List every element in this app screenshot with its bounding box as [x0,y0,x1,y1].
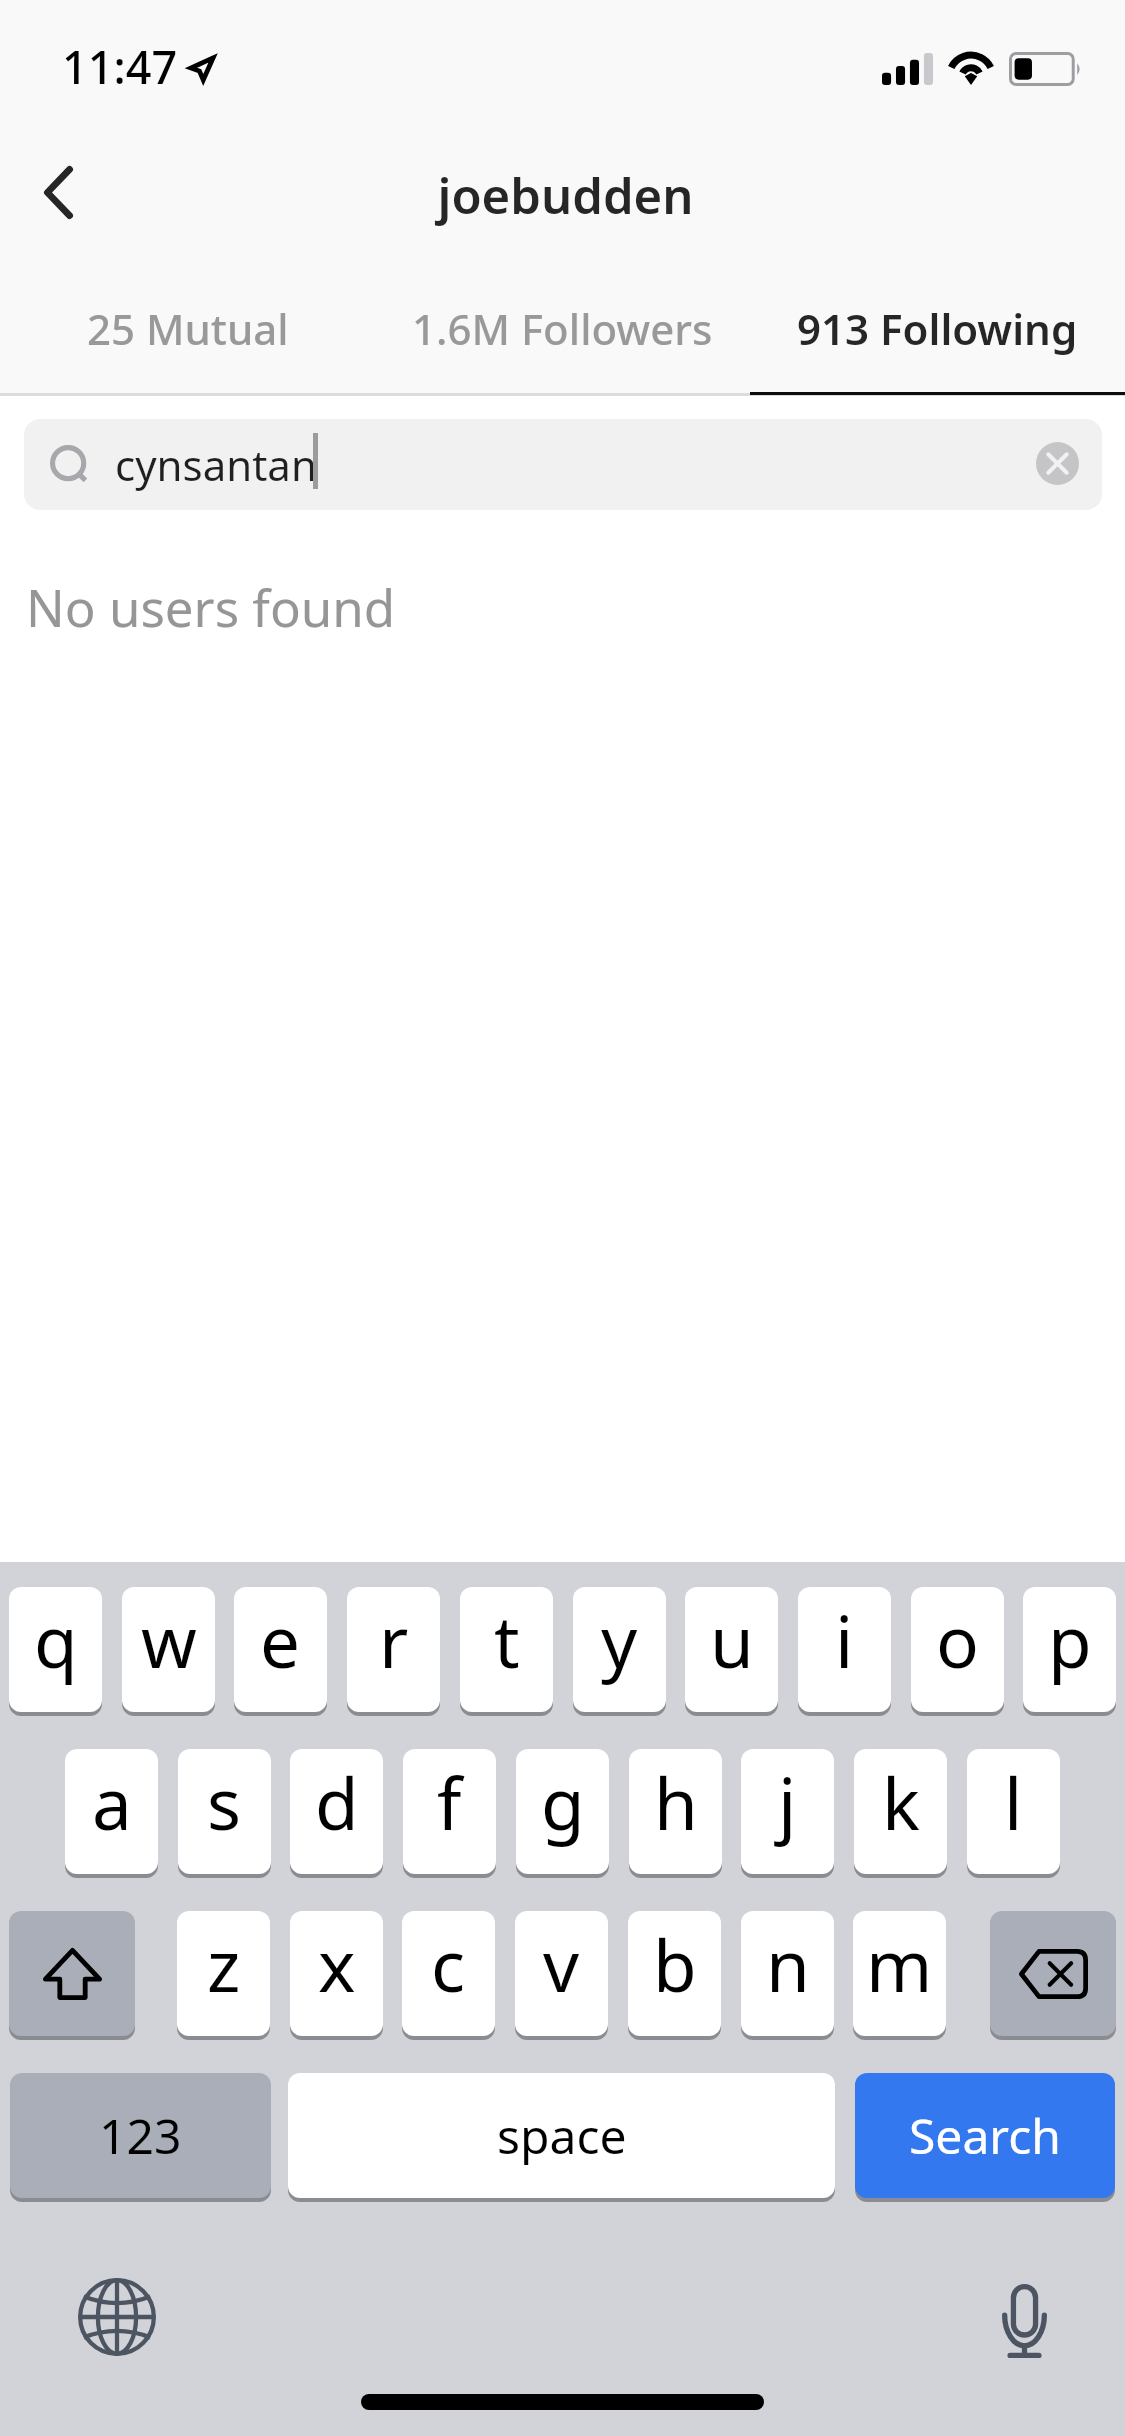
staticText: q [34,1592,78,1689]
button[interactable]: z [177,1911,270,2036]
button[interactable]: Backspace [990,1911,1116,2036]
button[interactable]: c [402,1911,495,2036]
button[interactable]: space [288,2073,835,2198]
button[interactable]: f [403,1749,496,1874]
staticText: x [318,1916,356,2013]
staticText: z [207,1916,241,2013]
button[interactable]: 123 [10,2073,271,2198]
button[interactable]: y [573,1587,666,1712]
staticText: d [315,1754,359,1851]
staticText: 913 Following [797,300,1078,357]
staticText: b [653,1916,697,2013]
button[interactable]: x [290,1911,383,2036]
button[interactable]: Clear text [1036,442,1079,485]
button[interactable]: 25 Mutual [0,272,375,395]
staticText: space [497,2103,627,2168]
button[interactable]: Back [8,132,128,252]
button[interactable]: h [629,1749,722,1874]
button[interactable]: t [460,1587,553,1712]
button[interactable]: s [178,1749,271,1874]
button[interactable]: l [967,1749,1060,1874]
button[interactable]: n [741,1911,834,2036]
staticText: f [437,1754,462,1851]
staticText: s [207,1754,242,1851]
button[interactable]: j [741,1749,834,1874]
button[interactable]: k [854,1749,947,1874]
button[interactable]: p [1023,1587,1116,1712]
staticText: 1.6M Followers [412,300,713,357]
button[interactable]: m [853,1911,946,2036]
button[interactable]: 1.6M Followers [375,272,750,395]
staticText: u [710,1592,754,1689]
staticText: Search [909,2103,1061,2168]
staticText: h [654,1754,698,1851]
button[interactable]: d [290,1749,383,1874]
button[interactable]: Shift [9,1911,135,2036]
staticText: cynsantan [115,436,317,493]
staticText: a [92,1754,132,1851]
staticText: g [541,1754,585,1851]
staticText: k [882,1754,920,1851]
button[interactable]: u [685,1587,778,1712]
staticText: 25 Mutual [87,300,289,357]
button[interactable]: o [911,1587,1004,1712]
staticText: w [141,1592,197,1689]
button[interactable]: r [347,1587,440,1712]
button[interactable]: e [234,1587,327,1712]
staticText: j [778,1754,797,1851]
button[interactable]: a [65,1749,158,1874]
button[interactable]: Change keyboard [39,2239,195,2395]
button[interactable]: g [516,1749,609,1874]
staticText: 123 [99,2103,182,2168]
staticText: r [379,1592,409,1689]
staticText: i [835,1592,854,1689]
button[interactable]: 913 Following [750,272,1125,395]
staticText: t [494,1592,520,1689]
staticText: No users found [26,572,396,641]
button[interactable]: i [798,1587,891,1712]
button[interactable]: v [515,1911,608,2036]
button[interactable]: q [9,1587,102,1712]
button[interactable]: Search [855,2073,1115,2198]
staticText: joebudden [3,162,1125,229]
button[interactable]: w [122,1587,215,1712]
staticText: p [1048,1592,1092,1689]
staticText: m [866,1916,933,2013]
button[interactable]: Dictate [946,2243,1102,2399]
staticText: e [260,1592,301,1689]
button[interactable]: b [628,1911,721,2036]
staticText: y [601,1592,638,1689]
staticText: 11:47 [62,36,178,97]
button[interactable]: Search [24,419,1102,510]
staticText: l [1004,1754,1023,1851]
staticText: o [936,1592,979,1689]
staticText: c [431,1916,466,2013]
staticText: v [543,1916,580,2013]
staticText: n [766,1916,810,2013]
